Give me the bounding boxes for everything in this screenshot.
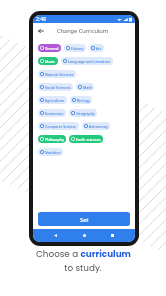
staticText: Art <box>96 46 102 51</box>
button[interactable]: Recent apps <box>106 229 119 242</box>
staticText: Computer Science <box>45 124 77 129</box>
button[interactable]: Back <box>49 229 62 242</box>
staticText: Astronomy <box>89 124 108 129</box>
staticText: Set <box>80 216 89 223</box>
button[interactable]: Philosophy <box>38 135 66 143</box>
button[interactable]: General <box>38 44 61 52</box>
button[interactable]: History <box>64 44 86 52</box>
button[interactable]: Natural Sciences <box>38 70 76 78</box>
staticText: Choose a curriculum <box>36 248 131 260</box>
staticText: 2:48 <box>36 16 46 23</box>
button[interactable]: Language and Literature <box>61 57 113 65</box>
staticText: Biology <box>77 98 90 103</box>
staticText: Social Sciences <box>45 85 71 90</box>
staticText: Economics <box>45 111 64 116</box>
button[interactable]: Computer Science <box>38 122 79 130</box>
button[interactable]: Geography <box>69 109 97 117</box>
staticText: Change Curriculum <box>57 27 108 35</box>
button[interactable]: Agriculture <box>38 96 67 104</box>
button[interactable]: Art <box>89 44 104 52</box>
button[interactable]: Music <box>38 57 58 65</box>
staticText: Earth sciences <box>76 137 101 142</box>
staticText: Language and Literature <box>68 59 111 64</box>
staticText: Natural Sciences <box>45 72 74 77</box>
button[interactable]: Earth sciences <box>69 135 103 143</box>
button[interactable]: Social Sciences <box>38 83 73 91</box>
staticText: Geography <box>76 111 95 116</box>
button[interactable]: Back <box>33 23 48 38</box>
staticText: Music <box>45 59 56 64</box>
button[interactable]: Economics <box>38 109 66 117</box>
staticText: Math <box>83 85 92 90</box>
staticText: History <box>71 46 84 51</box>
staticText: Philosophy <box>45 137 64 142</box>
button[interactable]: Nutrition <box>38 148 63 156</box>
button[interactable]: Home <box>78 229 91 242</box>
staticText: Nutrition <box>45 150 61 155</box>
staticText: to study. <box>64 262 102 274</box>
staticText: General <box>45 46 59 51</box>
button[interactable]: Math <box>76 83 94 91</box>
button[interactable]: Set <box>38 212 130 226</box>
staticText: Agriculture <box>45 98 65 103</box>
button[interactable]: Biology <box>70 96 92 104</box>
button[interactable]: Astronomy <box>82 122 110 130</box>
